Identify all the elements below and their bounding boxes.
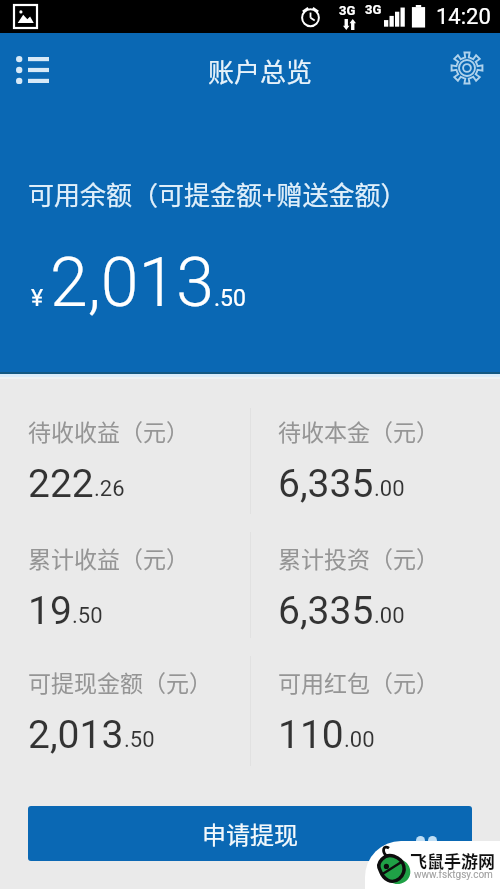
button[interactable]: 累计收益（元） [0,521,250,631]
staticText: .50 [124,727,155,753]
staticText: 222 [28,461,94,504]
staticText: .26 [94,476,125,502]
staticText: 2,013 [28,712,124,755]
staticText: ¥ [31,285,44,312]
button[interactable]: 待收收益（元） [0,394,250,504]
staticText: 账户总览 [208,52,313,90]
staticText: 待收收益（元） [28,414,189,447]
staticText: 可用余额（可提金额+赠送金额） [28,175,407,213]
staticText: 19 [28,588,72,631]
staticText: 申请提现 [202,816,298,851]
staticText: 可用红包（元） [278,665,439,698]
staticText: .00 [344,727,375,753]
staticText: 可提现金额（元） [28,665,212,698]
staticText: 飞鼠手游网 [410,848,495,873]
staticText: 6,335 [278,461,374,504]
staticText: www.fsktgsy.com [414,869,493,881]
button[interactable]: 累计投资（元） [250,521,500,631]
button[interactable]: Menu [16,56,49,82]
staticText: .00 [374,603,405,629]
staticText: 累计收益（元） [28,541,189,574]
staticText: .00 [374,476,405,502]
button[interactable]: 待收本金（元） [250,394,500,504]
staticText: 待收本金（元） [278,414,439,447]
button[interactable]: 申请提现 [28,806,472,861]
staticText: 3G [339,3,356,18]
staticText: 累计投资（元） [278,541,439,574]
staticText: 14:20 [436,4,491,30]
staticText: 110 [278,712,344,755]
staticText: 6,335 [278,588,374,631]
staticText: 3G [365,2,382,17]
button[interactable]: 可提现金额（元） [0,645,250,755]
staticText: .50 [214,285,246,312]
staticText: 2,013 [50,243,214,323]
button[interactable]: 可用红包（元） [250,645,500,755]
staticText: .50 [72,603,103,629]
button[interactable]: Settings [450,51,484,85]
